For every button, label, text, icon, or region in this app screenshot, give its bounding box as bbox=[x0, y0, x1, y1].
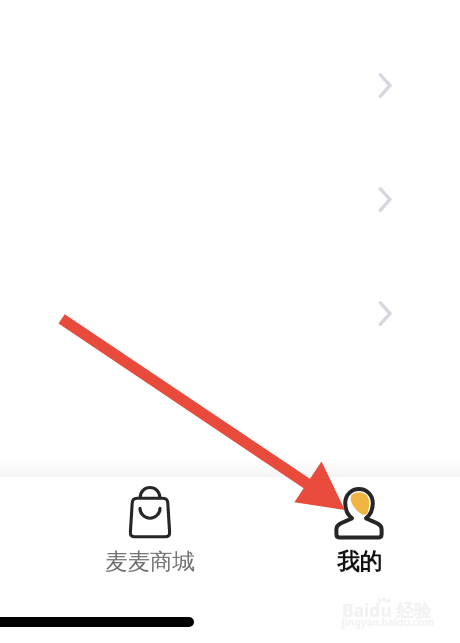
staticText: 麦麦商城 bbox=[105, 547, 195, 575]
other: 我的 bbox=[333, 486, 385, 538]
staticText: 我的 bbox=[337, 547, 382, 575]
button[interactable]: row3 bbox=[0, 256, 460, 370]
staticText: jingyan.baidu.com bbox=[342, 615, 434, 629]
button[interactable]: 我的 bbox=[295, 477, 423, 575]
other: 麦麦商城 bbox=[124, 486, 176, 538]
button[interactable]: 麦麦商城 bbox=[86, 477, 214, 575]
staticText: Baidu 经验 bbox=[342, 598, 432, 622]
